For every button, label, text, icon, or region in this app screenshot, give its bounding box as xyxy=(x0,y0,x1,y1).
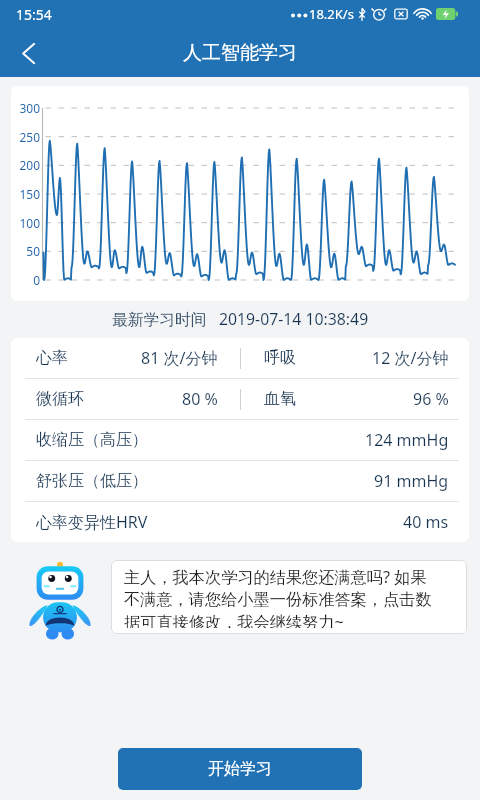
staticText: 96 % xyxy=(413,388,449,410)
button[interactable]: 心率变异性HRV xyxy=(11,502,469,542)
staticText: 呼吸 xyxy=(264,348,296,368)
staticText: 124 mmHg xyxy=(365,429,449,451)
staticText: 80 % xyxy=(182,388,218,410)
staticText: 心率变异性HRV xyxy=(36,511,148,533)
staticText: 12 次/分钟 xyxy=(372,347,449,369)
staticText: 舒张压（低压） xyxy=(36,471,148,491)
button[interactable]: 收缩压（高压） xyxy=(11,420,469,460)
button[interactable]: Back xyxy=(6,29,50,77)
staticText: 心率 xyxy=(36,348,68,368)
staticText: 15:54 xyxy=(16,5,52,24)
staticText: 150 xyxy=(19,186,40,202)
staticText: 81 次/分钟 xyxy=(141,347,218,369)
staticText: 主人，我本次学习的结果您还满意吗? 如果 不满意，请您给小墨一份标准答案，点击数… xyxy=(124,566,432,628)
button[interactable]: 开始学习 xyxy=(118,748,362,790)
staticText: 200 xyxy=(19,157,40,173)
staticText: 人工智能学习 xyxy=(183,41,297,65)
staticText: 40 ms xyxy=(403,511,449,533)
staticText: 开始学习 xyxy=(208,759,272,779)
staticText: 最新学习时间 2019-07-14 10:38:49 xyxy=(0,308,480,330)
staticText: 91 mmHg xyxy=(374,470,449,492)
staticText: 300 xyxy=(19,100,40,116)
button[interactable]: 舒张压（低压） xyxy=(11,461,469,501)
button[interactable]: 血氧 xyxy=(241,379,469,419)
button[interactable]: 呼吸 xyxy=(241,338,469,378)
button[interactable]: 微循环 xyxy=(11,379,240,419)
button[interactable]: 心率 xyxy=(11,338,240,378)
staticText: 收缩压（高压） xyxy=(36,430,148,450)
staticText: 250 xyxy=(19,129,40,145)
staticText: 微循环 xyxy=(36,389,84,409)
staticText: 100 xyxy=(19,215,40,231)
staticText: 18.2K/s xyxy=(309,5,354,23)
staticText: 50 xyxy=(26,243,40,259)
staticText: 0 xyxy=(33,272,40,288)
staticText: 血氧 xyxy=(264,389,296,409)
